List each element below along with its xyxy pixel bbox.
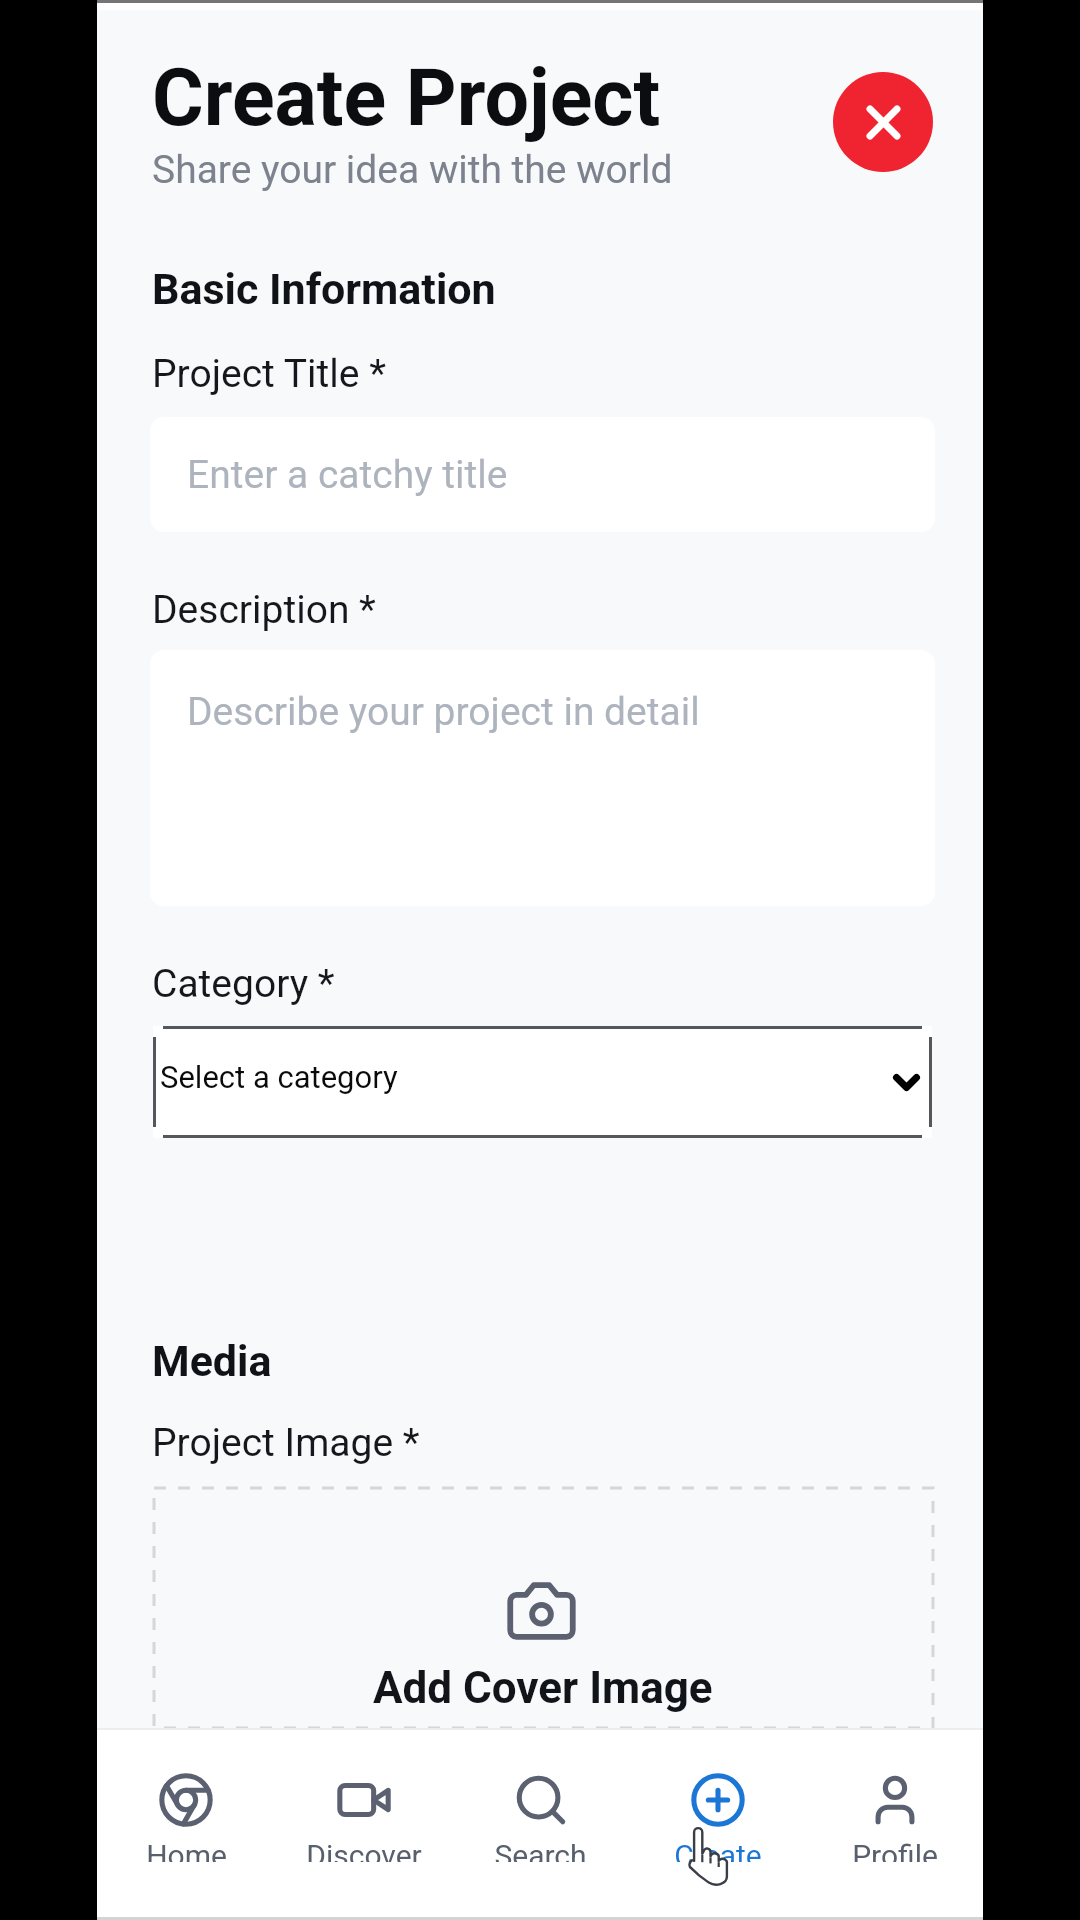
staticText: Add Cover Image xyxy=(373,1662,713,1714)
staticText: Home xyxy=(146,1838,227,1862)
staticText: Media xyxy=(152,1336,272,1386)
button[interactable]: Create xyxy=(629,1728,806,1920)
button[interactable]: Search xyxy=(452,1728,629,1920)
button[interactable]: Discover xyxy=(275,1728,452,1920)
staticText: Select a category xyxy=(160,1059,398,1095)
staticText: Discover xyxy=(306,1838,422,1862)
staticText: Category * xyxy=(152,961,335,1007)
staticText: Describe your project in detail xyxy=(187,689,700,735)
staticText: Search xyxy=(494,1838,587,1862)
staticText: Create xyxy=(674,1838,762,1862)
button[interactable]: Close xyxy=(833,72,933,172)
staticText: Share your idea with the world xyxy=(152,147,673,193)
button[interactable]: Describe your project in detail xyxy=(150,650,935,906)
button[interactable] xyxy=(154,1488,933,1728)
staticText: Project Title * xyxy=(152,351,386,397)
staticText: Profile xyxy=(852,1838,938,1862)
staticText: Description * xyxy=(152,587,376,633)
button[interactable]: Select a category xyxy=(153,1026,932,1138)
button[interactable]: Home xyxy=(97,1728,275,1920)
button[interactable]: Profile xyxy=(806,1728,983,1920)
button[interactable]: Enter a catchy title xyxy=(150,417,935,532)
staticText: Create Project xyxy=(152,52,661,145)
staticText: Basic Information xyxy=(152,264,496,314)
staticText: Project Image * xyxy=(152,1420,420,1466)
staticText: Enter a catchy title xyxy=(187,452,508,498)
